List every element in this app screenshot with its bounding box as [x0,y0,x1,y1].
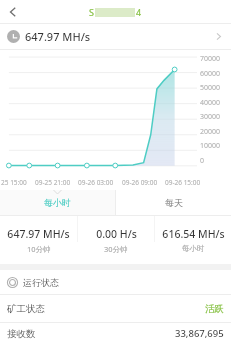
staticText: 0.00 H/s [96,227,137,241]
staticText: 20000 [200,127,221,137]
button[interactable]: 接收数 [0,323,231,344]
staticText: 4 [136,6,142,18]
staticText: 09-25 21:00 [35,178,71,187]
staticText: 33,867,695 [175,327,224,340]
staticText: 50000 [200,83,221,93]
staticText: 0 [200,156,205,166]
staticText: 每天 [165,197,183,208]
staticText: 647.97 MH/s [7,227,70,241]
staticText: 09-26 09:00 [122,178,158,187]
staticText: 活跃 [205,303,224,315]
button[interactable]: 矿工状态 [0,295,231,322]
button[interactable]: 每小时 [0,190,115,215]
button[interactable]: 647.97 MH/s [0,216,77,264]
staticText: 运行状态 [23,277,59,288]
staticText: 647.97 MH/s [25,29,91,44]
staticText: 每小时 [44,197,71,208]
staticText: 接收数 [7,328,36,340]
staticText: 25 15:00 [1,178,27,187]
staticText: 矿工状态 [7,303,45,315]
staticText: 10分钟 [27,244,51,254]
staticText: 09-26 03:00 [78,178,114,187]
staticText: 每小时 [182,244,205,253]
staticText: 09-26 15:00 [165,178,201,187]
button[interactable]: 616.54 MH/s [155,216,231,264]
button[interactable]: 每天 [116,190,231,215]
staticText: 30分钟 [104,244,128,254]
staticText: 40000 [200,98,221,108]
staticText: S [89,6,94,18]
button[interactable]: Back [0,0,26,23]
button[interactable]: 647.97 MH/s [0,24,231,49]
staticText: 616.54 MH/s [162,227,225,241]
button[interactable]: 0.00 H/s [78,216,154,264]
staticText: 10000 [200,141,221,151]
staticText: 60000 [200,69,221,79]
staticText: 30000 [200,112,221,122]
staticText: 70000 [200,54,221,64]
